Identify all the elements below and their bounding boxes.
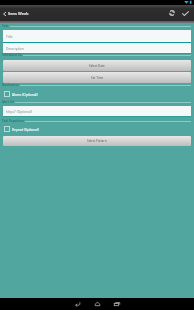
staticText: Task <box>2 24 9 28</box>
button[interactable]: Home <box>87 298 107 310</box>
button[interactable]: Description <box>3 43 191 53</box>
staticText: Set Time <box>91 76 104 80</box>
staticText: Select Date <box>89 64 105 68</box>
button[interactable]: Done <box>179 5 192 21</box>
staticText: Title <box>6 34 13 38</box>
staticText: Select Pattern <box>87 139 107 143</box>
button[interactable]: Alarm (Optional) <box>4 90 194 97</box>
button[interactable]: Select Date <box>3 60 191 71</box>
button[interactable]: Refresh <box>165 5 178 21</box>
button[interactable]: Title <box>3 30 191 42</box>
button[interactable]: Recent apps <box>107 298 127 310</box>
staticText: Description <box>6 46 24 50</box>
staticText: Alert Uri <box>2 100 14 104</box>
staticText: Scheduled On <box>2 53 22 57</box>
button[interactable]: Select Pattern <box>3 136 191 146</box>
button[interactable]: Repeat (Optional) <box>4 125 194 132</box>
button[interactable]: Set Time <box>3 72 191 83</box>
staticText: Task Repetition <box>2 119 24 123</box>
button[interactable]: Sens Week <box>1 9 31 18</box>
staticText: http:// (Optional) <box>6 109 32 113</box>
staticText: Notification <box>2 83 19 87</box>
staticText: Repeat (Optional) <box>12 127 40 131</box>
staticText: Sens Week <box>8 11 29 16</box>
button[interactable]: Back <box>67 298 87 310</box>
button[interactable]: http:// (Optional) <box>3 106 191 116</box>
staticText: Alarm (Optional) <box>12 92 38 96</box>
